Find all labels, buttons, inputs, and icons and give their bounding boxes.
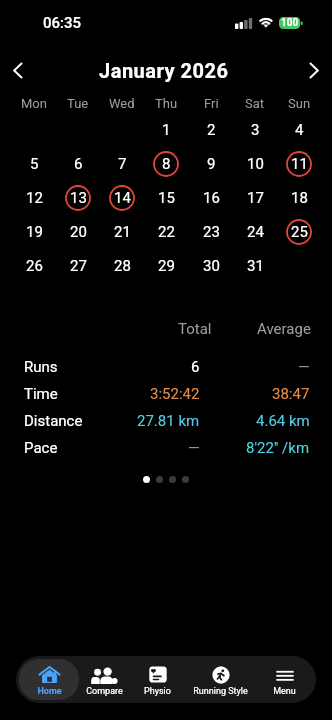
staticText: 23 bbox=[203, 223, 220, 241]
staticText: 19 bbox=[26, 223, 43, 241]
button[interactable]: 1 bbox=[151, 115, 181, 145]
button[interactable]: 3 bbox=[240, 115, 270, 145]
staticText: Sat bbox=[245, 96, 265, 111]
staticText: 3 bbox=[251, 121, 260, 139]
button[interactable]: Menu bbox=[252, 656, 316, 703]
button[interactable]: 2 bbox=[196, 115, 226, 145]
button[interactable]: Running Style bbox=[188, 656, 252, 703]
staticText: Physio bbox=[144, 686, 171, 697]
staticText: Mon bbox=[21, 96, 47, 111]
staticText: 2 bbox=[207, 121, 216, 139]
staticText: 22 bbox=[158, 223, 175, 241]
staticText: 31 bbox=[247, 257, 264, 275]
button[interactable]: Runs bbox=[0, 355, 332, 379]
button[interactable]: 22 bbox=[151, 217, 181, 247]
staticText: 6 bbox=[191, 358, 200, 376]
button[interactable]: 15 bbox=[151, 183, 181, 213]
staticText: 18 bbox=[291, 189, 308, 207]
button[interactable]: 18 bbox=[284, 183, 314, 213]
button[interactable]: Pace bbox=[0, 436, 332, 460]
button[interactable]: 21 bbox=[107, 217, 137, 247]
staticText: 9 bbox=[207, 155, 216, 173]
staticText: — bbox=[298, 358, 310, 376]
staticText: 26 bbox=[26, 257, 43, 275]
staticText: Total bbox=[178, 320, 212, 338]
button[interactable]: 12 bbox=[19, 183, 49, 213]
staticText: 27 bbox=[70, 257, 87, 275]
button[interactable]: 5 bbox=[19, 149, 49, 179]
button[interactable]: 23 bbox=[196, 217, 226, 247]
staticText: Runs bbox=[24, 358, 58, 376]
staticText: 24 bbox=[247, 223, 264, 241]
button[interactable]: 6 bbox=[63, 149, 93, 179]
staticText: 20 bbox=[70, 223, 87, 241]
staticText: 30 bbox=[203, 257, 220, 275]
staticText: — bbox=[188, 439, 200, 457]
staticText: Tue bbox=[67, 96, 89, 111]
staticText: 38:47 bbox=[272, 385, 310, 403]
button[interactable]: Time bbox=[0, 382, 332, 406]
staticText: Wed bbox=[109, 96, 135, 111]
staticText: Compare bbox=[86, 686, 123, 697]
staticText: 8'22'' /km bbox=[246, 439, 310, 457]
staticText: Pace bbox=[24, 439, 58, 457]
button[interactable]: 14 bbox=[107, 183, 137, 213]
staticText: 29 bbox=[158, 257, 175, 275]
button[interactable]: Distance bbox=[0, 409, 332, 433]
staticText: 14 bbox=[114, 189, 131, 207]
button[interactable]: Previous month bbox=[0, 48, 37, 92]
button[interactable]: Compare bbox=[82, 656, 127, 703]
button[interactable]: 17 bbox=[240, 183, 270, 213]
button[interactable]: Next month bbox=[294, 48, 332, 92]
staticText: 8 bbox=[162, 155, 171, 173]
button[interactable]: 4 bbox=[284, 115, 314, 145]
staticText: Fri bbox=[204, 96, 219, 111]
button[interactable]: 28 bbox=[107, 251, 137, 281]
button[interactable]: 9 bbox=[196, 149, 226, 179]
staticText: 3:52:42 bbox=[150, 385, 200, 403]
staticText: 10 bbox=[247, 155, 264, 173]
staticText: Thu bbox=[155, 96, 178, 111]
button[interactable]: 20 bbox=[63, 217, 93, 247]
button[interactable]: 8 bbox=[151, 149, 181, 179]
staticText: January 2026 bbox=[99, 59, 229, 82]
staticText: 4 bbox=[295, 121, 304, 139]
staticText: 06:35 bbox=[43, 14, 82, 32]
button[interactable]: Home bbox=[19, 659, 79, 700]
staticText: Sun bbox=[288, 96, 311, 111]
button[interactable]: 11 bbox=[284, 149, 314, 179]
staticText: 4.64 km bbox=[256, 412, 310, 430]
button[interactable]: 13 bbox=[63, 183, 93, 213]
staticText: Running Style bbox=[193, 686, 248, 697]
staticText: Time bbox=[24, 385, 58, 403]
button[interactable]: 19 bbox=[19, 217, 49, 247]
button[interactable]: 24 bbox=[240, 217, 270, 247]
staticText: 6 bbox=[74, 155, 83, 173]
staticText: 12 bbox=[26, 189, 43, 207]
staticText: 13 bbox=[70, 189, 87, 207]
button[interactable]: 25 bbox=[284, 217, 314, 247]
staticText: 5 bbox=[30, 155, 39, 173]
staticText: 27.81 km bbox=[137, 412, 200, 430]
button[interactable]: 7 bbox=[107, 149, 137, 179]
staticText: 28 bbox=[114, 257, 131, 275]
button[interactable]: 10 bbox=[240, 149, 270, 179]
button[interactable]: 16 bbox=[196, 183, 226, 213]
staticText: 21 bbox=[114, 223, 131, 241]
staticText: 11 bbox=[291, 155, 308, 173]
staticText: Menu bbox=[273, 686, 296, 697]
button[interactable]: 30 bbox=[196, 251, 226, 281]
button[interactable]: Physio bbox=[127, 656, 188, 703]
button[interactable]: 29 bbox=[151, 251, 181, 281]
staticText: 16 bbox=[203, 189, 220, 207]
staticText: 100 bbox=[281, 17, 299, 29]
button[interactable]: 31 bbox=[240, 251, 270, 281]
staticText: 1 bbox=[162, 121, 171, 139]
button[interactable]: 26 bbox=[19, 251, 49, 281]
staticText: Home bbox=[37, 686, 62, 697]
staticText: 7 bbox=[118, 155, 127, 173]
button[interactable]: 27 bbox=[63, 251, 93, 281]
staticText: 17 bbox=[247, 189, 264, 207]
staticText: 25 bbox=[291, 223, 308, 241]
staticText: Average bbox=[257, 320, 311, 338]
